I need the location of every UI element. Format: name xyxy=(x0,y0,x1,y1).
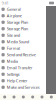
staticText: Settings xyxy=(7,72,20,77)
button[interactable]: Tab xyxy=(47,94,56,100)
staticText: Storage Plan xyxy=(7,26,28,31)
button[interactable]: Storage Plan xyxy=(0,25,46,32)
staticText: 9:41 xyxy=(1,0,8,6)
staticText: Storage Plan xyxy=(7,20,28,25)
button[interactable]: General xyxy=(0,6,46,12)
staticText: Email Transfer xyxy=(7,65,33,70)
button[interactable]: Tab xyxy=(0,94,9,100)
staticText: Airplane xyxy=(7,13,22,18)
button[interactable]: Send and Receive xyxy=(0,51,46,58)
button[interactable]: Settings xyxy=(0,71,46,77)
button[interactable]: Tab xyxy=(37,94,47,100)
button[interactable]: Storage Plan xyxy=(0,19,46,25)
staticText: General xyxy=(7,7,21,12)
button[interactable]: Tab xyxy=(19,94,28,100)
button[interactable]: Help Center xyxy=(0,77,46,84)
button[interactable]: Format xyxy=(0,45,46,51)
staticText: Site and xyxy=(7,33,20,38)
button[interactable]: Email Transfer xyxy=(0,64,46,71)
button[interactable]: Make and Services xyxy=(0,84,46,90)
staticText: Send and Receive xyxy=(7,52,36,57)
button[interactable]: Media Sound xyxy=(0,38,46,45)
staticText: Media Sound xyxy=(7,39,29,44)
button[interactable]: Site and xyxy=(0,32,46,38)
staticText: Media xyxy=(7,59,18,64)
staticText: Format xyxy=(7,46,20,51)
button[interactable]: Airplane xyxy=(0,12,46,19)
staticText: Make and Services xyxy=(7,85,40,90)
button[interactable]: Tab xyxy=(28,94,37,100)
staticText: Help Center xyxy=(7,78,28,83)
button[interactable]: Media xyxy=(0,58,46,64)
button[interactable]: Tab xyxy=(9,94,19,100)
